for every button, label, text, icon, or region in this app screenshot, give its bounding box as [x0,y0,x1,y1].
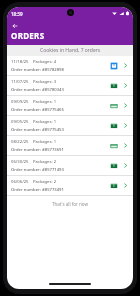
other: Open order details [122,142,129,149]
other: Package status [110,162,118,170]
staticText: ORDERS [11,30,45,41]
staticText: 11/18/25 [11,59,29,65]
staticText: 06/06/25 [11,179,29,185]
staticText: That's all for now [7,201,133,207]
staticText: 09/09/25 [11,99,29,105]
button[interactable]: 11/07/25 [7,76,133,95]
button[interactable]: 06/06/25 [7,176,133,195]
other: Package status [110,182,118,190]
other: Open order details [122,162,129,169]
staticText: Order number: #85780343 [11,87,64,93]
button[interactable]: 09/05/25 [7,116,133,135]
button[interactable]: 11/18/25 [7,56,133,75]
staticText: Order number: #85773691 [11,147,64,153]
staticText: Order number: #85775465 [11,107,64,113]
staticText: Order number: #85775453 [11,127,64,133]
other: Open order details [122,82,129,89]
staticText: 06/30/25 [11,159,29,165]
other: Package status [110,142,118,150]
button[interactable]: 08/22/25 [7,136,133,155]
button[interactable]: 09/09/25 [7,96,133,115]
staticText: Packages: 4 [33,59,57,65]
other: Open order details [122,102,129,109]
other: Open order details [122,182,129,189]
staticText: 08/22/25 [11,139,29,145]
button[interactable]: 06/30/25 [7,156,133,175]
staticText: Packages: 3 [33,79,57,85]
staticText: Order number: #85773491 [11,187,64,193]
staticText: 18:39 [11,11,23,17]
other: Package status [110,122,118,130]
other: Package status [110,82,118,90]
staticText: Packages: 1 [33,139,57,145]
other: Package status [110,102,118,110]
staticText: Order number: #85771493 [11,167,64,173]
staticText: Cookies in Hand, 7 orders [40,47,101,54]
staticText: Packages: 1 [33,119,57,125]
staticText: Order number: #85782898 [11,67,64,73]
button[interactable]: Back [10,21,19,30]
staticText: Packages: 2 [33,159,57,165]
staticText: Packages: 2 [33,179,57,185]
staticText: Packages: 1 [33,99,57,105]
staticText: 09/05/25 [11,119,29,125]
other: Package status [110,62,118,70]
staticText: 11/07/25 [11,79,29,85]
other: Open order details [122,62,129,69]
other: Open order details [122,122,129,129]
